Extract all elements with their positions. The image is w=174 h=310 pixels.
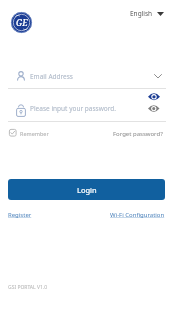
button[interactable]: Remember bbox=[8, 128, 50, 138]
staticText: GSI PORTAL V1.0 bbox=[8, 284, 48, 291]
button[interactable]: Register bbox=[8, 211, 32, 219]
staticText: Email Address bbox=[30, 72, 73, 81]
button[interactable]: GE bbox=[11, 12, 32, 33]
button[interactable] bbox=[0, 100, 174, 118]
button[interactable]: English bbox=[128, 7, 166, 20]
button[interactable] bbox=[146, 91, 161, 102]
staticText: English bbox=[130, 9, 153, 18]
staticText: Remember bbox=[20, 130, 49, 137]
staticText: GE bbox=[16, 17, 28, 29]
button[interactable]: Email Address bbox=[0, 66, 174, 86]
button[interactable]: Login bbox=[8, 179, 165, 200]
button[interactable]: Wi-Fi Configuration bbox=[110, 211, 165, 219]
button[interactable] bbox=[146, 103, 161, 114]
button[interactable]: Forget password? bbox=[113, 130, 163, 138]
staticText: Login bbox=[77, 185, 97, 195]
staticText: Please input your password. bbox=[30, 104, 116, 113]
